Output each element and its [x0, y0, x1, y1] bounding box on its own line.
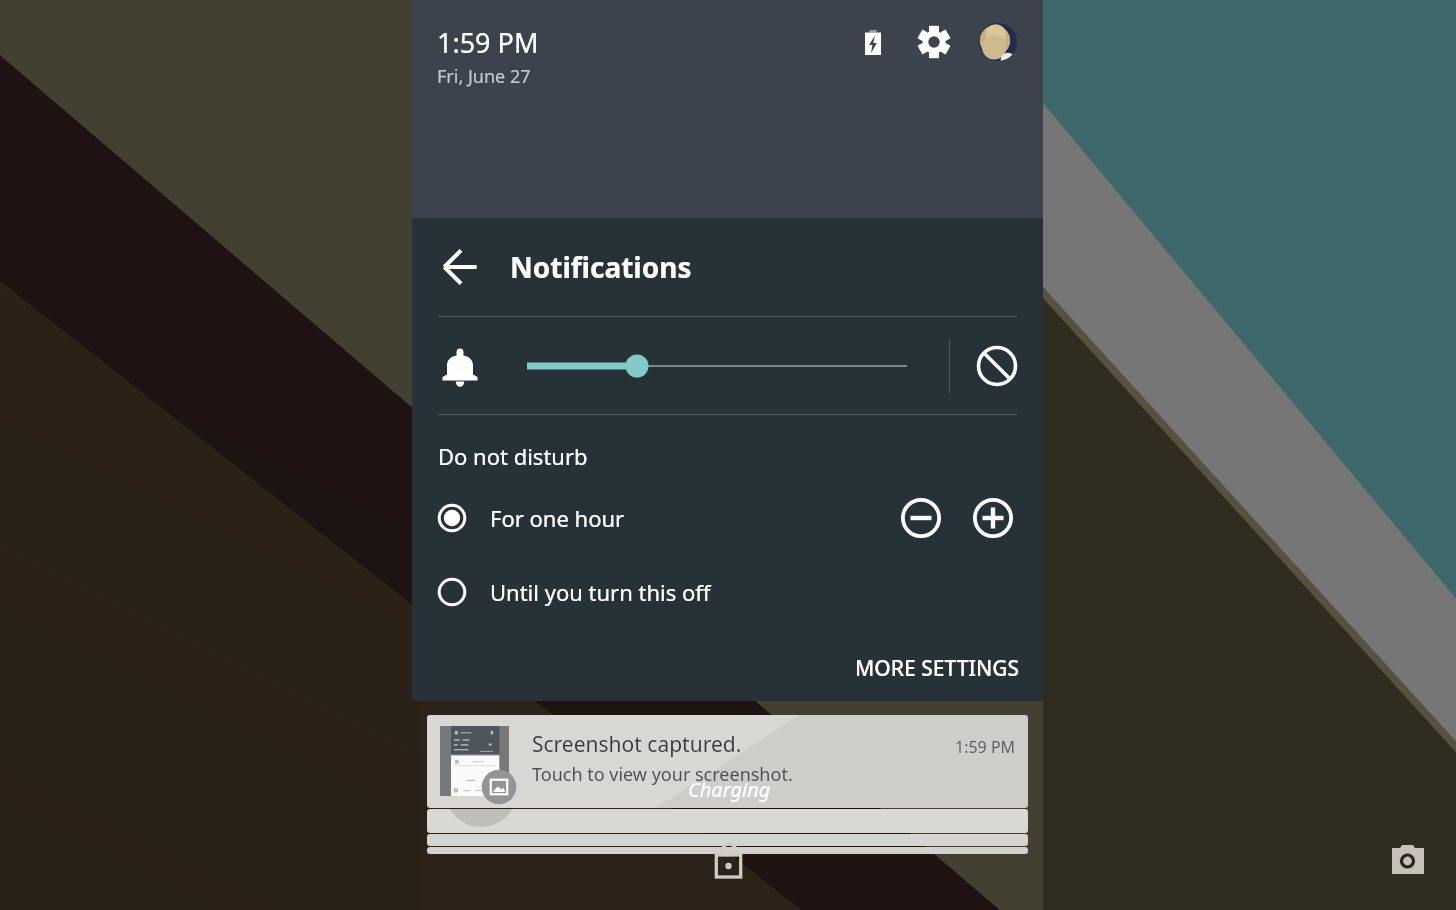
staticText: 1:59 PM [437, 24, 539, 61]
button[interactable]: Do not disturb [973, 342, 1021, 390]
staticText: Notifications [510, 248, 692, 286]
button[interactable]: Increase time [969, 494, 1017, 542]
button[interactable] [427, 847, 1028, 854]
button[interactable] [427, 809, 1028, 833]
button[interactable]: Back [412, 218, 1043, 316]
button[interactable] [527, 344, 907, 388]
button[interactable]: MORE SETTINGS [847, 644, 1027, 693]
button[interactable]: Settings [912, 20, 956, 64]
staticText: Fri, June 27 [437, 64, 531, 89]
staticText: Screenshot captured. [532, 730, 742, 759]
button[interactable]: Screenshot captured. [427, 715, 1028, 808]
button[interactable]: Camera [1390, 843, 1426, 877]
button[interactable]: Until you turn this off [412, 564, 1043, 620]
button[interactable]: Unlock [711, 839, 746, 881]
staticText: Charging [688, 776, 771, 803]
button[interactable]: For one hour [412, 490, 1043, 546]
staticText: 1:59 PM [955, 736, 1016, 758]
button[interactable]: Battery charging [851, 20, 895, 64]
staticText: For one hour [490, 503, 625, 533]
button[interactable]: Notification volume [434, 340, 486, 392]
staticText: MORE SETTINGS [855, 654, 1019, 683]
staticText: Until you turn this off [490, 577, 711, 607]
staticText: Do not disturb [438, 441, 588, 471]
button[interactable] [427, 834, 1028, 846]
button[interactable]: Decrease time [897, 494, 945, 542]
staticText: Touch to view your screenshot. [532, 762, 793, 787]
button[interactable]: User profile [977, 21, 1019, 63]
button[interactable]: Back [438, 245, 482, 289]
